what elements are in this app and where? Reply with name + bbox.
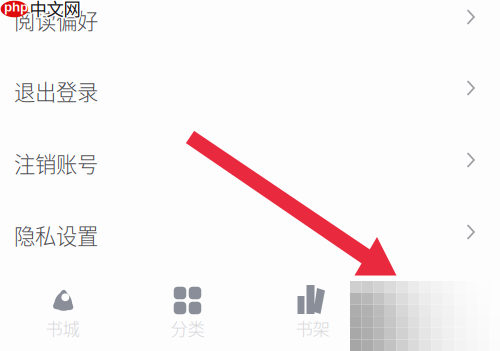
- staticText: 中文网: [29, 0, 80, 19]
- staticText: 中文网: [28, 0, 79, 22]
- staticText: 中文网: [28, 0, 79, 21]
- button[interactable]: 书城: [0, 0, 500, 351]
- staticText: 中文网: [29, 0, 80, 22]
- staticText: 退出登录: [14, 75, 98, 106]
- button[interactable]: 阅读偏好: [0, 0, 500, 52]
- button[interactable]: 隐私设置: [0, 196, 500, 267]
- staticText: 阅读偏好: [14, 4, 98, 35]
- staticText: 书架: [295, 315, 329, 341]
- button[interactable]: 退出登录: [0, 52, 500, 123]
- button[interactable]: 书架: [0, 0, 500, 351]
- staticText: 中文网: [31, 0, 82, 21]
- staticText: 分类: [170, 315, 204, 341]
- staticText: 中文网: [30, 0, 81, 20]
- button[interactable]: 注销账号: [0, 124, 500, 195]
- staticText: php: [4, 0, 28, 14]
- staticText: 隐私设置: [14, 219, 98, 250]
- staticText: 书城: [45, 315, 79, 341]
- staticText: 注销账号: [14, 147, 98, 178]
- staticText: 中文网: [28, 0, 79, 20]
- staticText: 中文网: [29, 0, 80, 21]
- button[interactable]: 分类: [0, 0, 500, 351]
- staticText: 中文网: [30, 0, 81, 22]
